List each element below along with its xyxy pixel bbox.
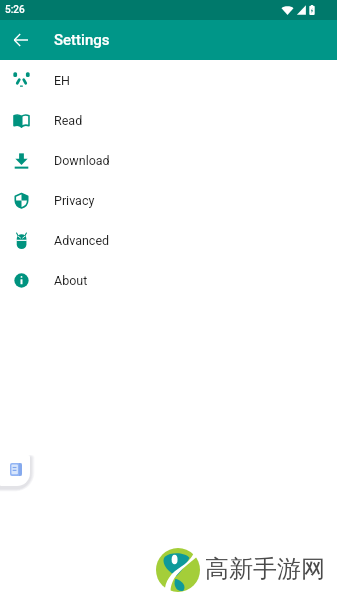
button[interactable]: EH: [0, 60, 337, 100]
staticText: About: [54, 273, 88, 288]
staticText: Read: [54, 113, 83, 128]
staticText: EH: [54, 73, 71, 88]
staticText: 高新手游网: [205, 554, 325, 584]
button[interactable]: Download: [0, 140, 337, 180]
staticText: Advanced: [54, 233, 110, 248]
button[interactable]: Open app: [0, 455, 30, 486]
staticText: Settings: [54, 31, 110, 49]
staticText: 5:26: [5, 4, 25, 16]
staticText: Download: [54, 153, 110, 168]
staticText: Privacy: [54, 193, 95, 208]
button[interactable]: About: [0, 260, 337, 300]
button[interactable]: Privacy: [0, 180, 337, 220]
button[interactable]: Back: [6, 25, 36, 55]
button[interactable]: Advanced: [0, 220, 337, 260]
button[interactable]: Read: [0, 100, 337, 140]
